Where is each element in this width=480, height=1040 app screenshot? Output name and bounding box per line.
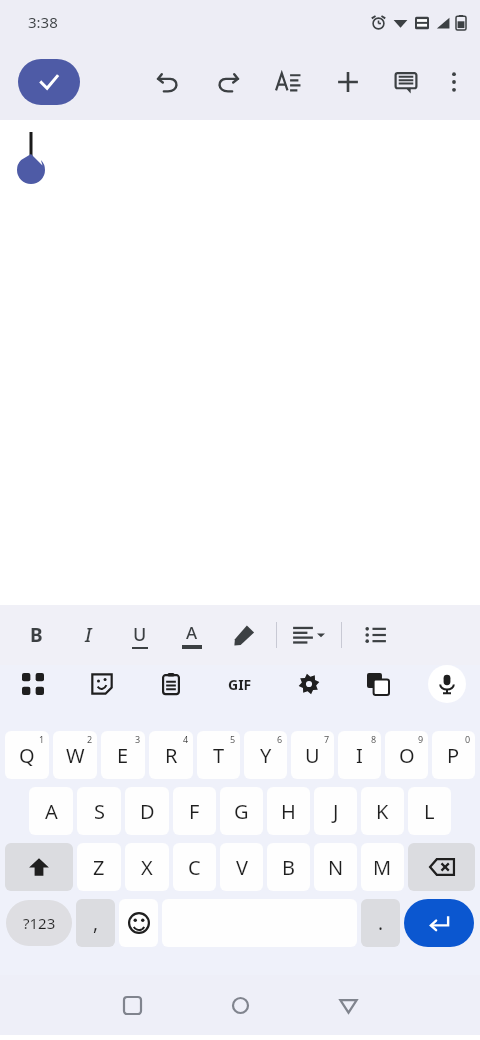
staticText: O — [399, 742, 415, 769]
staticText: R — [165, 742, 178, 769]
button[interactable]: U — [291, 731, 334, 779]
button[interactable]: Clipboard — [152, 665, 190, 703]
staticText: 0 — [465, 733, 471, 745]
staticText: V — [236, 854, 248, 881]
button[interactable]: P — [432, 731, 475, 779]
staticText: 2 — [87, 733, 93, 745]
button[interactable]: Period — [361, 899, 400, 947]
staticText: B — [30, 622, 43, 648]
staticText: GIF — [228, 675, 252, 694]
staticText: C — [188, 854, 201, 881]
button[interactable]: Emoji — [119, 899, 158, 947]
staticText: W — [66, 742, 85, 769]
staticText: A — [186, 621, 198, 644]
button[interactable]: G — [220, 787, 263, 835]
staticText: G — [234, 798, 249, 825]
button[interactable]: Shift — [5, 843, 73, 891]
button[interactable]: More options — [434, 62, 474, 102]
button[interactable]: Enter — [404, 899, 474, 947]
button[interactable]: Voice input — [428, 665, 466, 703]
button[interactable]: E — [101, 731, 145, 779]
button[interactable]: O — [385, 731, 428, 779]
button[interactable]: Back — [318, 975, 378, 1035]
button[interactable]: Backspace — [408, 843, 475, 891]
button[interactable]: Comments — [384, 60, 428, 104]
staticText: 9 — [418, 733, 424, 745]
button[interactable]: Text formatting — [266, 60, 310, 104]
staticText: S — [94, 798, 105, 825]
button[interactable]: Settings — [290, 665, 328, 703]
button[interactable]: X — [125, 843, 169, 891]
button[interactable]: A — [29, 787, 73, 835]
staticText: 1 — [39, 733, 45, 745]
staticText: Y — [260, 742, 272, 769]
staticText: Q — [19, 742, 35, 769]
staticText: M — [373, 854, 392, 881]
staticText: F — [189, 798, 200, 825]
staticText: 3:38 — [28, 12, 58, 32]
button[interactable]: K — [361, 787, 404, 835]
button[interactable]: R — [149, 731, 193, 779]
button[interactable]: Undo — [146, 60, 190, 104]
button[interactable]: Italic — [70, 613, 106, 657]
button[interactable]: H — [267, 787, 310, 835]
button[interactable]: Comma — [76, 899, 115, 947]
button[interactable]: F — [173, 787, 216, 835]
button[interactable]: Q — [5, 731, 49, 779]
button[interactable]: B — [267, 843, 310, 891]
staticText: K — [376, 798, 389, 825]
button[interactable]: L — [408, 787, 451, 835]
button[interactable]: Bold — [18, 613, 54, 657]
button[interactable]: W — [53, 731, 97, 779]
staticText: 8 — [371, 733, 377, 745]
button[interactable]: Home — [210, 975, 270, 1035]
button[interactable]: V — [220, 843, 263, 891]
staticText: N — [328, 854, 344, 881]
button[interactable]: Y — [244, 731, 287, 779]
staticText: , — [93, 910, 99, 936]
button[interactable]: Highlight — [226, 613, 262, 657]
button[interactable]: D — [125, 787, 169, 835]
staticText: P — [447, 742, 460, 769]
staticText: 3 — [135, 733, 141, 745]
button[interactable]: Z — [77, 843, 121, 891]
staticText: E — [117, 742, 129, 769]
button[interactable]: Translate — [359, 665, 397, 703]
button[interactable]: Text color — [174, 613, 210, 657]
button[interactable]: C — [173, 843, 216, 891]
staticText: U — [305, 742, 320, 769]
button[interactable]: M — [361, 843, 404, 891]
button[interactable]: Insert — [326, 60, 370, 104]
button[interactable]: I — [338, 731, 381, 779]
button[interactable]: Bulleted list — [358, 613, 394, 657]
staticText: 6 — [277, 733, 283, 745]
button[interactable]: Clipboard grid — [14, 665, 52, 703]
staticText: L — [424, 798, 435, 825]
button[interactable]: Redo — [206, 60, 250, 104]
button[interactable]: S — [77, 787, 121, 835]
staticText: A — [45, 798, 58, 825]
staticText: B — [282, 854, 295, 881]
staticText: Z — [93, 854, 105, 881]
button[interactable]: Done — [18, 59, 80, 105]
staticText: U — [133, 622, 147, 647]
staticText: 4 — [183, 733, 189, 745]
staticText: D — [140, 798, 155, 825]
button[interactable]: Recents — [102, 975, 162, 1035]
staticText: 5 — [230, 733, 236, 745]
button[interactable]: ?123 — [6, 900, 72, 946]
button[interactable]: GIF — [221, 665, 259, 703]
staticText: 7 — [324, 733, 330, 745]
button[interactable]: T — [197, 731, 240, 779]
staticText: ?123 — [23, 913, 56, 933]
button[interactable]: Alignment — [291, 613, 327, 657]
button[interactable]: Stickers — [83, 665, 121, 703]
button[interactable]: Underline — [122, 613, 158, 657]
staticText: X — [141, 854, 153, 881]
staticText: T — [213, 742, 225, 769]
button[interactable]: N — [314, 843, 357, 891]
button[interactable]: J — [314, 787, 357, 835]
staticText: . — [378, 910, 384, 936]
staticText: J — [333, 798, 339, 825]
